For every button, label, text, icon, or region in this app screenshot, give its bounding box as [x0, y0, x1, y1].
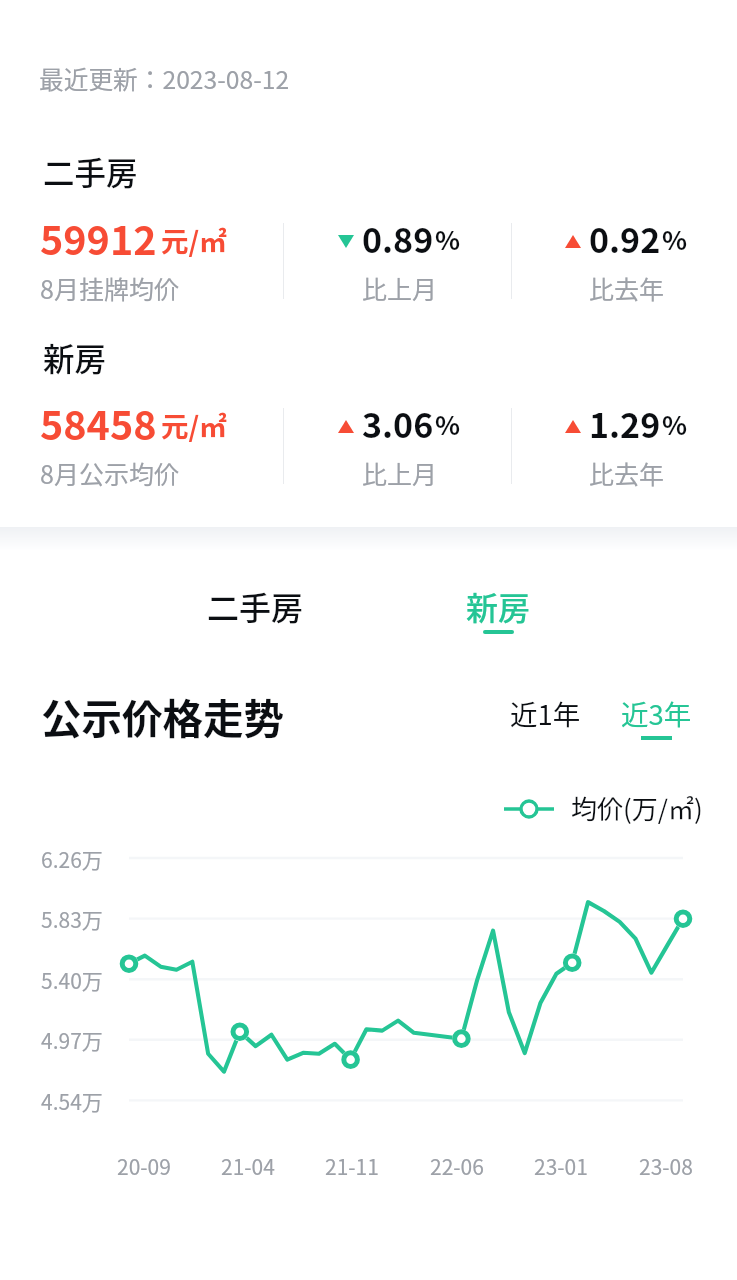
staticText: 比去年 [589, 455, 665, 491]
staticText: 近3年 [621, 693, 692, 733]
staticText: 0.92 [589, 214, 661, 263]
other: Increase [565, 420, 581, 433]
staticText: 元/㎡ [161, 405, 227, 445]
staticText: 4.54万 [41, 1086, 103, 1116]
staticText: 8月挂牌均价 [40, 270, 179, 306]
staticText: % [662, 220, 688, 258]
other: Decrease [338, 235, 354, 248]
staticText: 58458 [40, 394, 157, 451]
staticText: 新房 [43, 334, 107, 380]
staticText: 23-08 [639, 1151, 693, 1181]
staticText: 21-04 [221, 1151, 275, 1181]
staticText: 3.06 [362, 399, 434, 448]
staticText: 新房 [466, 583, 531, 629]
staticText: % [435, 405, 461, 443]
staticText: 比上月 [362, 270, 438, 306]
staticText: 4.97万 [41, 1025, 103, 1055]
staticText: 6.26万 [41, 844, 103, 874]
staticText: 元/㎡ [161, 220, 227, 260]
staticText: % [435, 220, 461, 258]
staticText: 二手房 [207, 583, 304, 629]
staticText: 0.89 [362, 214, 434, 263]
staticText: 近1年 [510, 693, 581, 733]
button[interactable]: 新房 [434, 565, 563, 652]
staticText: 最近更新：2023-08-12 [39, 60, 290, 96]
staticText: 22-06 [430, 1151, 484, 1181]
staticText: 59912 [40, 209, 157, 266]
staticText: 23-01 [534, 1151, 588, 1181]
staticText: 二手房 [43, 148, 138, 194]
staticText: 比上月 [362, 455, 438, 491]
button[interactable]: 近3年 [605, 681, 708, 752]
staticText: % [662, 405, 688, 443]
staticText: 8月公示均价 [40, 455, 179, 491]
other: Increase [565, 235, 581, 248]
staticText: 1.29 [589, 399, 661, 448]
staticText: 5.83万 [41, 904, 103, 934]
staticText: 21-11 [325, 1151, 379, 1181]
button[interactable]: 近1年 [494, 681, 597, 745]
staticText: 均价(万/㎡) [571, 789, 703, 827]
staticText: 比去年 [589, 270, 665, 306]
other: Average price series legend [503, 796, 555, 822]
staticText: 5.40万 [41, 965, 103, 995]
other: Increase [338, 420, 354, 433]
button[interactable]: 二手房 [175, 565, 336, 647]
staticText: 20-09 [117, 1151, 171, 1181]
staticText: 公示价格走势 [41, 687, 284, 746]
